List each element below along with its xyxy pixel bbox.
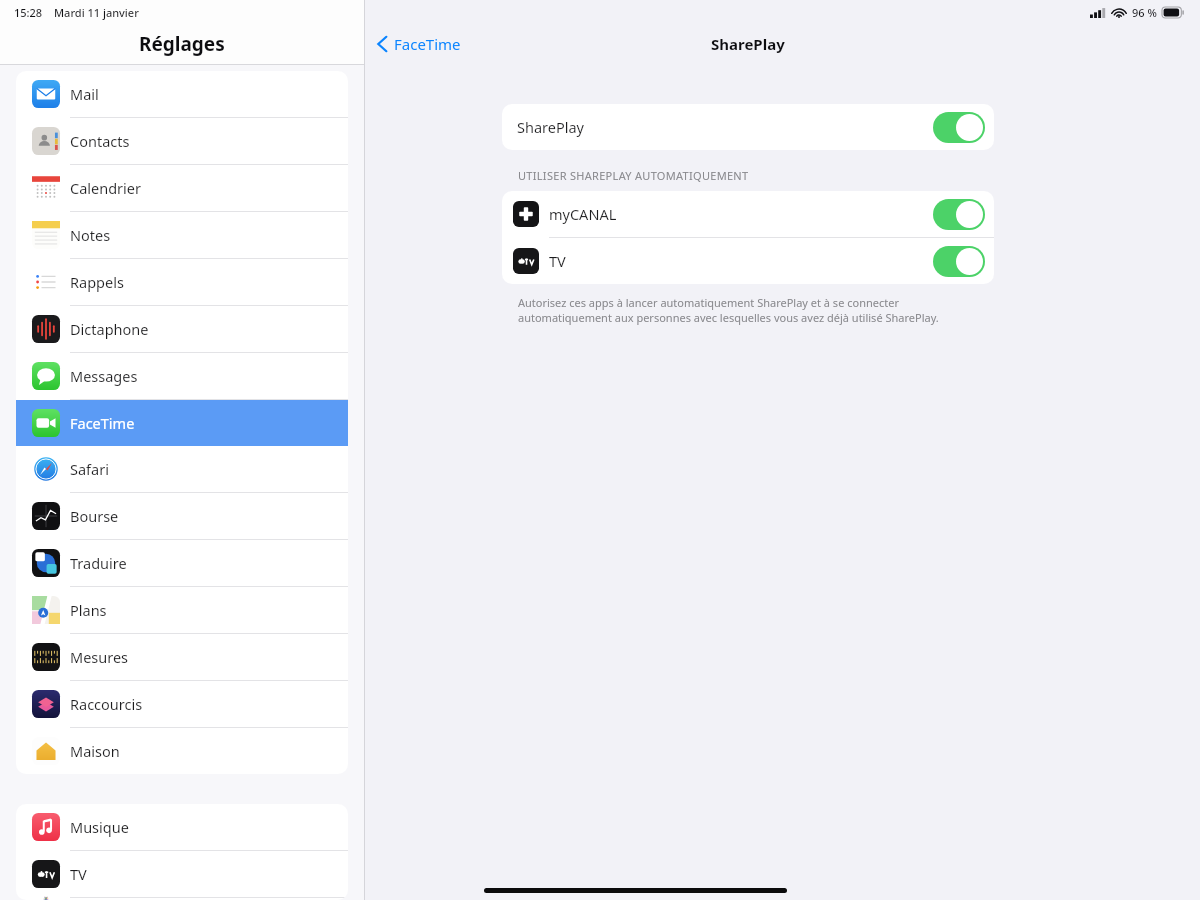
button[interactable]: Mesures <box>16 634 348 680</box>
staticText: Rappels <box>70 272 124 292</box>
button[interactable]: TV <box>502 238 994 284</box>
staticText: Autorisez ces apps à lancer automatiquem… <box>518 295 992 325</box>
button[interactable]: Toggle on <box>933 112 985 143</box>
staticText: Mardi 11 janvier <box>54 5 139 20</box>
staticText: Safari <box>70 459 109 479</box>
staticText: Messages <box>70 366 138 386</box>
button[interactable]: Messages <box>16 353 348 399</box>
staticText: Musique <box>70 817 129 837</box>
staticText: Raccourcis <box>70 694 143 714</box>
staticText: Maison <box>70 741 120 761</box>
button[interactable]: Bourse <box>16 493 348 539</box>
staticText: Réglages <box>139 31 225 57</box>
staticText: FaceTime <box>394 34 461 54</box>
button[interactable]: Mail <box>16 71 348 117</box>
staticText: myCANAL <box>549 204 617 224</box>
button[interactable]: FaceTime <box>16 400 348 446</box>
button[interactable]: Plans <box>16 587 348 633</box>
staticText: TV <box>70 864 87 884</box>
staticText: 96 % <box>1132 5 1157 20</box>
staticText: Dictaphone <box>70 319 149 339</box>
staticText: Bourse <box>70 506 119 526</box>
staticText: Contacts <box>70 131 130 151</box>
staticText: 15:28 <box>14 5 43 20</box>
staticText: SharePlay <box>517 117 584 137</box>
button[interactable]: TV <box>16 851 348 897</box>
button[interactable]: Rappels <box>16 259 348 305</box>
staticText: FaceTime <box>70 413 135 433</box>
button[interactable]: Maison <box>16 728 348 774</box>
staticText: Calendrier <box>70 178 141 198</box>
button[interactable]: FaceTime <box>373 30 465 58</box>
staticText: SharePlay <box>711 34 785 54</box>
button[interactable]: Notes <box>16 212 348 258</box>
button[interactable]: SharePlay <box>502 104 994 150</box>
button[interactable]: Calendrier <box>16 165 348 211</box>
staticText: TV <box>549 251 566 271</box>
button[interactable]: Traduire <box>16 540 348 586</box>
button[interactable]: myCANAL <box>502 191 994 237</box>
staticText: Mail <box>70 84 99 104</box>
button[interactable]: Toggle on <box>933 246 985 277</box>
staticText: UTILISER SHAREPLAY AUTOMATIQUEMENT <box>518 168 749 183</box>
button[interactable]: Photos <box>16 898 348 900</box>
staticText: Traduire <box>70 553 127 573</box>
button[interactable]: Toggle on <box>933 199 985 230</box>
button[interactable]: Musique <box>16 804 348 850</box>
button[interactable]: Contacts <box>16 118 348 164</box>
button[interactable]: Raccourcis <box>16 681 348 727</box>
staticText: Plans <box>70 600 107 620</box>
staticText: Notes <box>70 225 111 245</box>
button[interactable]: Dictaphone <box>16 306 348 352</box>
button[interactable]: Safari <box>16 446 348 492</box>
staticText: Mesures <box>70 647 129 667</box>
